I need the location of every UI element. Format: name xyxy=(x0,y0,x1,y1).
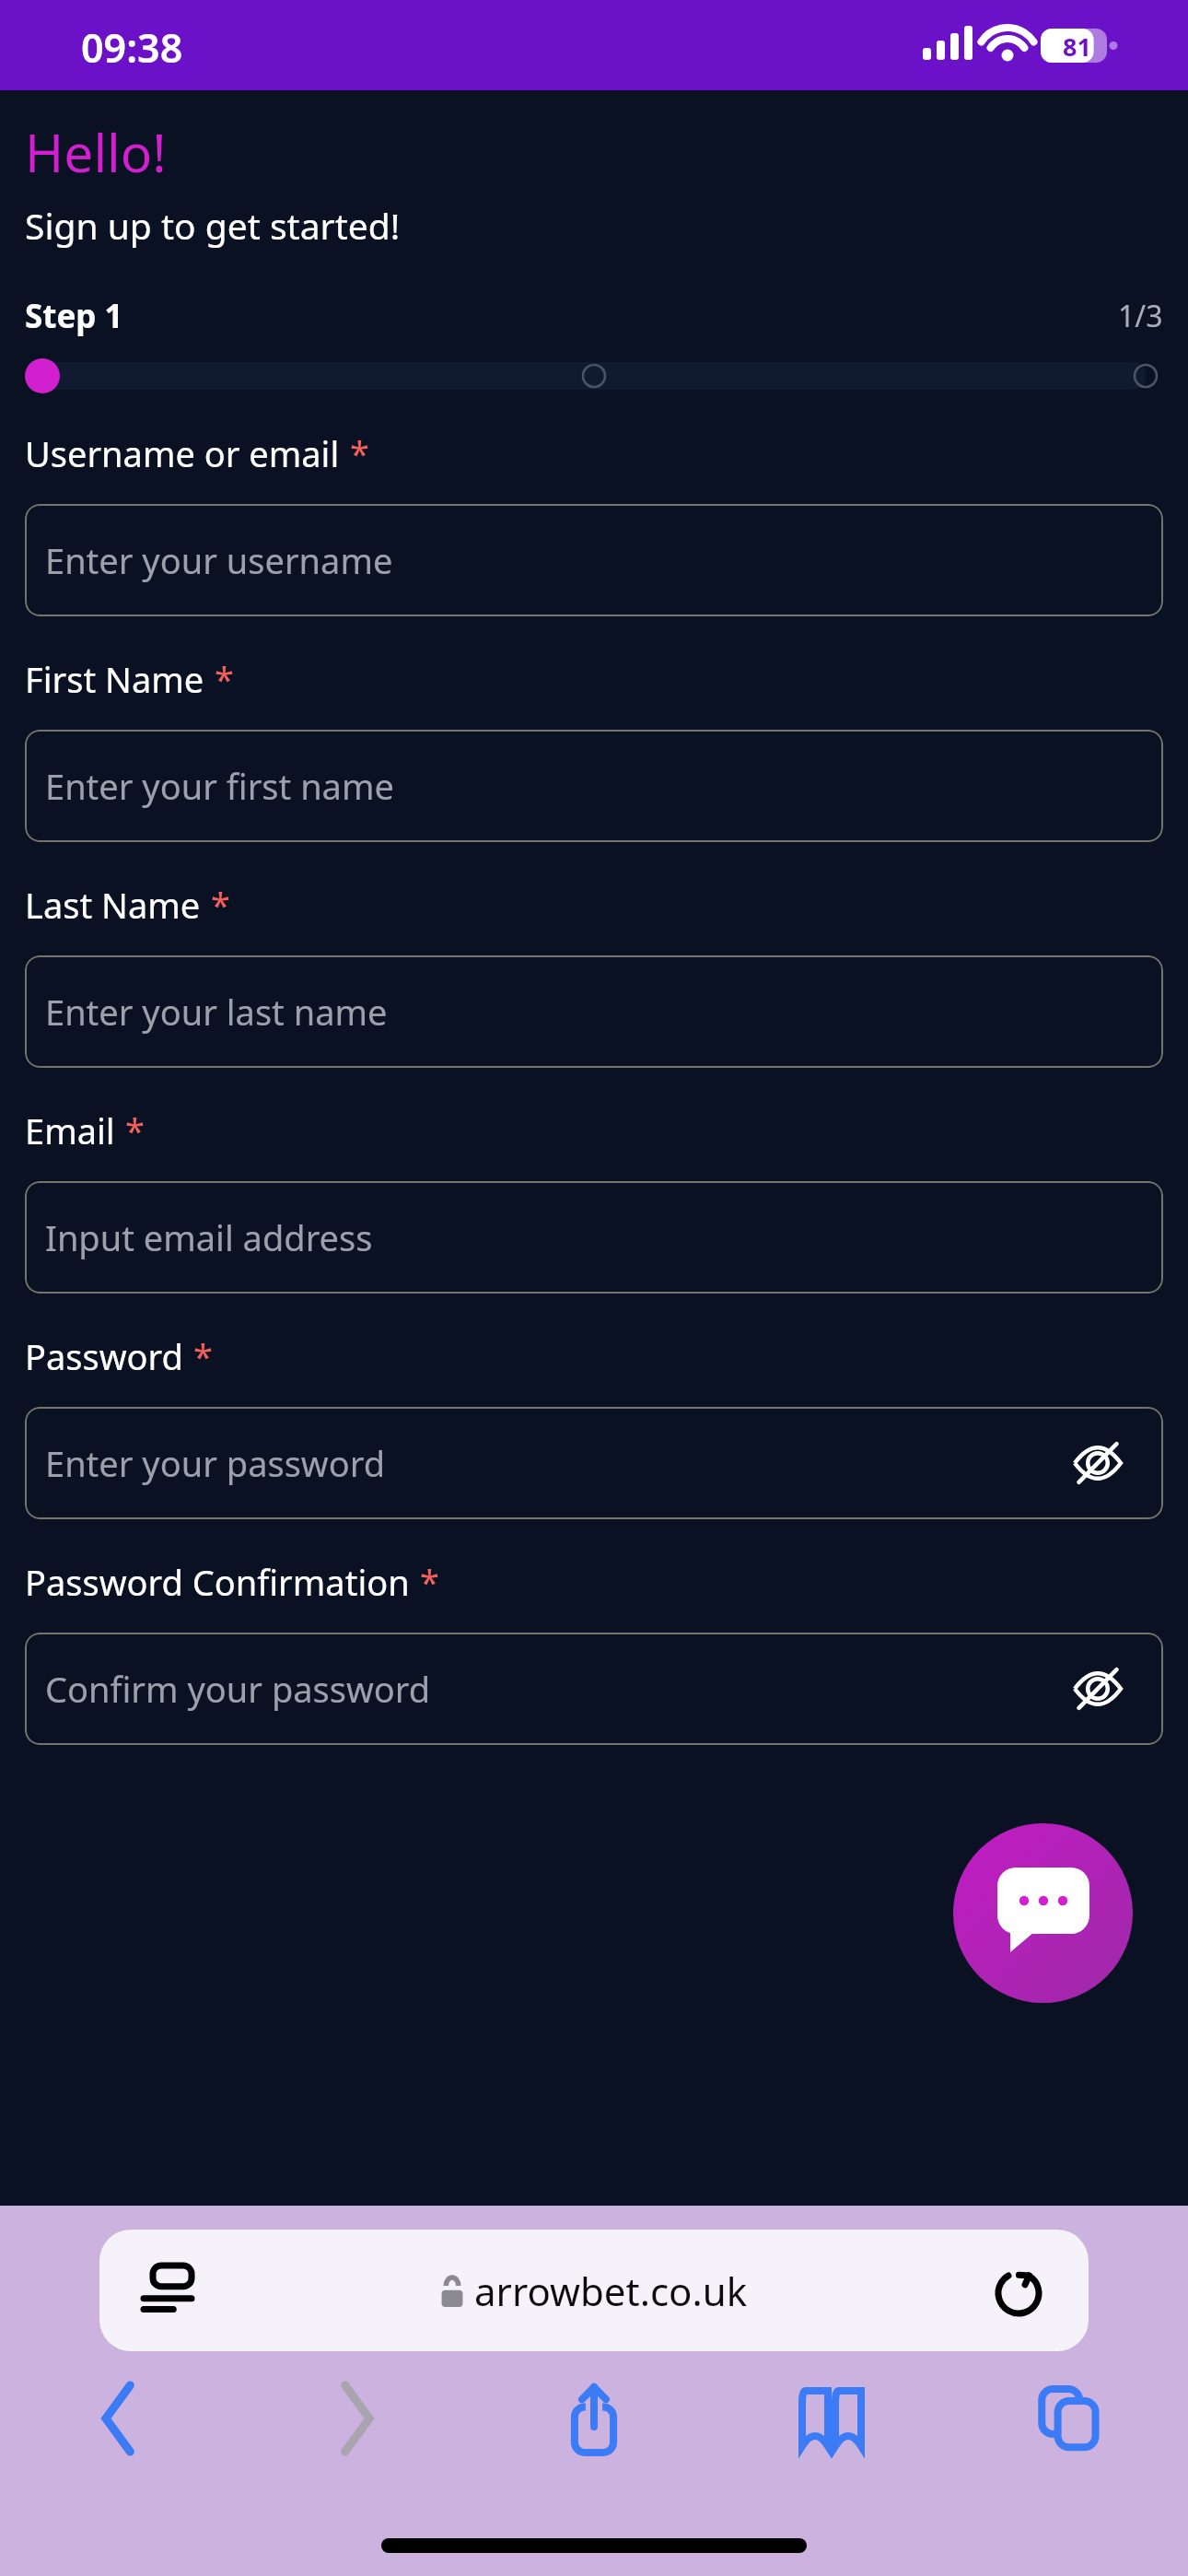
other: Reader view xyxy=(144,2266,192,2315)
staticText: Step 1 xyxy=(25,294,123,338)
staticText: Enter your last name xyxy=(45,988,388,1036)
other: Reload xyxy=(995,2266,1042,2314)
button[interactable]: Share xyxy=(475,2368,713,2469)
button[interactable]: Tabs xyxy=(950,2368,1188,2469)
button[interactable]: Confirm your password xyxy=(25,1633,1163,1745)
staticText: * xyxy=(215,655,234,703)
staticText: Enter your password xyxy=(45,1439,386,1487)
staticText: Enter your username xyxy=(45,536,393,584)
staticText: Hello! xyxy=(25,116,167,188)
button[interactable]: Forward xyxy=(238,2368,475,2469)
staticText: Last Name xyxy=(25,881,201,929)
other: Show password xyxy=(1073,1445,1123,1481)
staticText: * xyxy=(350,429,369,477)
button[interactable]: Enter your last name xyxy=(25,955,1163,1068)
button[interactable]: Back xyxy=(0,2368,238,2469)
other: Show password xyxy=(1073,1670,1123,1707)
staticText: Enter your first name xyxy=(45,762,394,810)
button[interactable]: Enter your username xyxy=(25,504,1163,616)
staticText: Email xyxy=(25,1107,115,1154)
button[interactable]: Enter your first name xyxy=(25,730,1163,842)
button[interactable]: Enter your password xyxy=(25,1407,1163,1519)
staticText: * xyxy=(211,881,230,929)
staticText: Password Confirmation xyxy=(25,1558,410,1606)
staticText: * xyxy=(125,1107,145,1154)
staticText: * xyxy=(193,1332,213,1380)
staticText: Input email address xyxy=(45,1213,373,1261)
staticText: 1/3 xyxy=(1118,296,1163,336)
staticText: First Name xyxy=(25,655,204,703)
button[interactable]: Reader view xyxy=(99,2230,1089,2351)
staticText: 09:38 xyxy=(81,20,183,75)
button[interactable]: Open chat xyxy=(953,1823,1133,2003)
button[interactable]: Bookmarks xyxy=(713,2368,950,2469)
staticText: Sign up to get started! xyxy=(25,201,401,250)
staticText: arrowbet.co.uk xyxy=(474,2265,748,2317)
staticText: 81 xyxy=(1063,29,1091,64)
button[interactable]: Input email address xyxy=(25,1181,1163,1294)
staticText: Confirm your password xyxy=(45,1665,431,1713)
staticText: Username or email xyxy=(25,429,340,477)
staticText: * xyxy=(420,1558,439,1606)
staticText: Password xyxy=(25,1332,183,1380)
